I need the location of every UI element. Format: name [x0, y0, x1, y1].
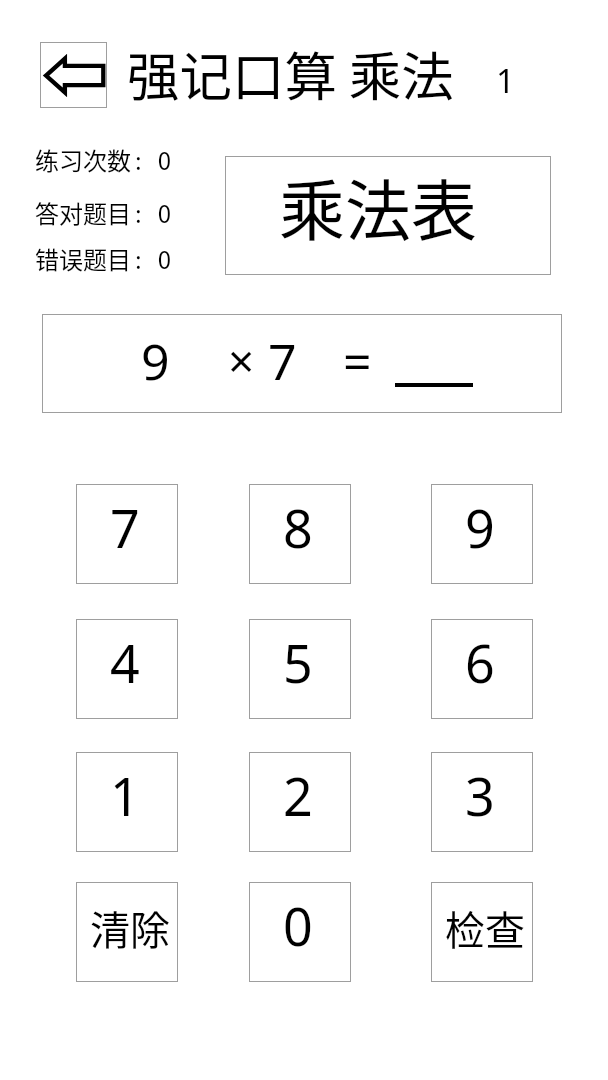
staticText: 乘法表 [279, 158, 477, 254]
staticText: 1 [496, 58, 515, 103]
button[interactable]: 0 [249, 882, 351, 982]
staticText: 8 [283, 492, 313, 563]
staticText: 练习次数 : 0 [35, 142, 171, 177]
staticText: 9 [465, 492, 495, 563]
staticText: 0 [283, 890, 313, 961]
button[interactable]: 4 [76, 619, 178, 719]
button[interactable]: 清除 [76, 882, 178, 982]
staticText: 3 [465, 760, 495, 831]
staticText: 4 [110, 627, 140, 698]
staticText: × [228, 329, 255, 392]
button[interactable]: 3 [431, 752, 533, 852]
button[interactable]: 7 [76, 484, 178, 584]
staticText: 清除 [90, 899, 170, 957]
staticText: 强记口算 乘法 [127, 35, 454, 111]
button[interactable]: 2 [249, 752, 351, 852]
button[interactable]: Back [40, 42, 107, 108]
button[interactable]: 5 [249, 619, 351, 719]
staticText: = [343, 327, 372, 395]
staticText: 7 [110, 492, 140, 563]
staticText: 1 [110, 760, 140, 831]
button[interactable]: 6 [431, 619, 533, 719]
staticText: 答对题目 : 0 [35, 195, 171, 230]
staticText: 7 [268, 327, 297, 395]
button[interactable]: 检查 [431, 882, 533, 982]
button[interactable]: 8 [249, 484, 351, 584]
button[interactable]: 乘法表 [225, 156, 551, 275]
staticText: 2 [283, 760, 313, 831]
button[interactable]: 9 [431, 484, 533, 584]
button[interactable]: 1 [76, 752, 178, 852]
staticText: 9 [141, 327, 170, 395]
staticText: 检查 [445, 899, 525, 957]
staticText: 6 [465, 627, 495, 698]
staticText: 5 [283, 627, 313, 698]
staticText: 错误题目 : 0 [35, 241, 171, 276]
